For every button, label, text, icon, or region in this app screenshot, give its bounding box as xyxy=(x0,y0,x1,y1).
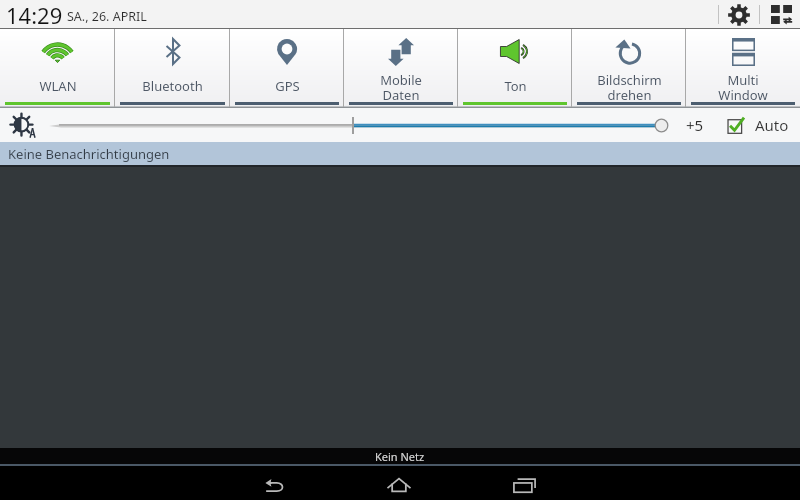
button[interactable]: Auto brightness xyxy=(8,108,38,142)
staticText: Multi Window xyxy=(718,71,768,101)
staticText: +5 xyxy=(686,115,704,135)
button[interactable]: GPS xyxy=(230,29,344,107)
staticText: SA., 26. APRIL xyxy=(67,8,147,25)
staticText: 14:29 xyxy=(6,0,63,29)
button[interactable]: Settings xyxy=(725,0,753,29)
staticText: Bluetooth xyxy=(142,77,203,95)
staticText: Kein Netz xyxy=(375,449,425,464)
staticText: Bildschirm drehen xyxy=(597,71,662,101)
staticText: Auto xyxy=(755,115,789,135)
button[interactable]: Mobile Daten xyxy=(344,29,458,107)
staticText: Mobile Daten xyxy=(380,71,422,101)
button[interactable]: Home xyxy=(375,468,423,500)
staticText: WLAN xyxy=(39,77,77,95)
button[interactable]: Quick settings xyxy=(766,0,796,29)
button[interactable]: Auto xyxy=(727,115,789,135)
button[interactable]: WLAN xyxy=(0,29,115,107)
button[interactable]: Bildschirm drehen xyxy=(572,29,686,107)
button[interactable]: Back xyxy=(250,468,298,500)
button[interactable]: Ton xyxy=(458,29,572,107)
staticText: Ton xyxy=(504,77,527,95)
button[interactable]: Recents xyxy=(500,468,548,500)
button[interactable]: Bluetooth xyxy=(115,29,230,107)
staticText: GPS xyxy=(275,77,300,95)
staticText: Keine Benachrichtigungen xyxy=(8,145,170,163)
button[interactable]: Multi Window xyxy=(686,29,800,107)
